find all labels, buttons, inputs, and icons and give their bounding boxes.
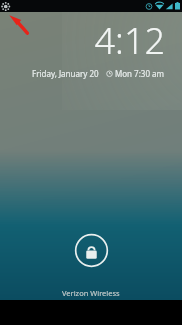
staticText: Mon 7:30 am — [115, 68, 165, 79]
staticText: Friday, January 20 — [32, 68, 99, 79]
staticText: 4:12 — [94, 16, 165, 65]
staticText: Verizon Wireless — [62, 288, 120, 298]
button[interactable]: Unlock — [74, 233, 109, 268]
